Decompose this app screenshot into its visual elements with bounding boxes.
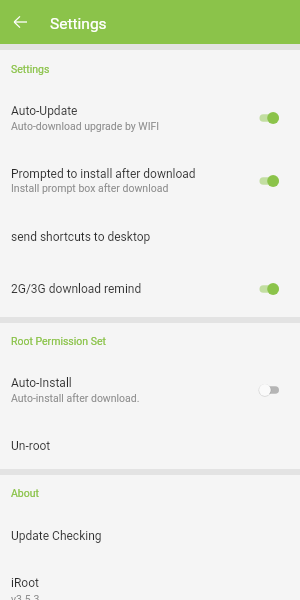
- button[interactable]: Auto-Install switch: [251, 377, 287, 403]
- button[interactable]: iRoot: [0, 564, 300, 600]
- button[interactable]: 2G/3G download remind: [0, 268, 300, 317]
- staticText: About: [11, 487, 39, 499]
- button[interactable]: Prompted to install after download: [0, 152, 300, 210]
- staticText: Un-root: [11, 439, 51, 453]
- button[interactable]: Un-root: [0, 420, 300, 469]
- staticText: Auto-Update: [11, 104, 78, 118]
- staticText: Auto-Install: [11, 376, 72, 390]
- staticText: Update Checking: [11, 529, 102, 543]
- staticText: v3.5.3: [11, 593, 40, 600]
- staticText: Settings: [11, 63, 50, 75]
- button[interactable]: Prompted to install after download switc…: [251, 168, 287, 194]
- staticText: Prompted to install after download: [11, 167, 196, 181]
- staticText: Install prompt box after download: [11, 182, 169, 194]
- staticText: iRoot: [11, 576, 39, 590]
- button[interactable]: 2G/3G download remind switch: [251, 276, 287, 302]
- button[interactable]: Auto-Update switch: [251, 105, 287, 131]
- button[interactable]: Auto-Install: [0, 361, 300, 420]
- staticText: Root Permission Set: [11, 335, 106, 347]
- button[interactable]: Settings: [0, 50, 300, 88]
- staticText: Settings: [50, 15, 107, 33]
- staticText: send shortcuts to desktop: [11, 230, 151, 244]
- button[interactable]: send shortcuts to desktop: [0, 210, 300, 268]
- staticText: Auto-download upgrade by WIFI: [11, 120, 160, 132]
- button[interactable]: Back: [3, 0, 37, 44]
- button[interactable]: About: [0, 475, 300, 513]
- button[interactable]: Root Permission Set: [0, 323, 300, 361]
- button[interactable]: Auto-Update: [0, 88, 300, 152]
- staticText: 2G/3G download remind: [11, 282, 142, 296]
- staticText: Auto-install after download.: [11, 392, 140, 404]
- button[interactable]: Update Checking: [0, 513, 300, 564]
